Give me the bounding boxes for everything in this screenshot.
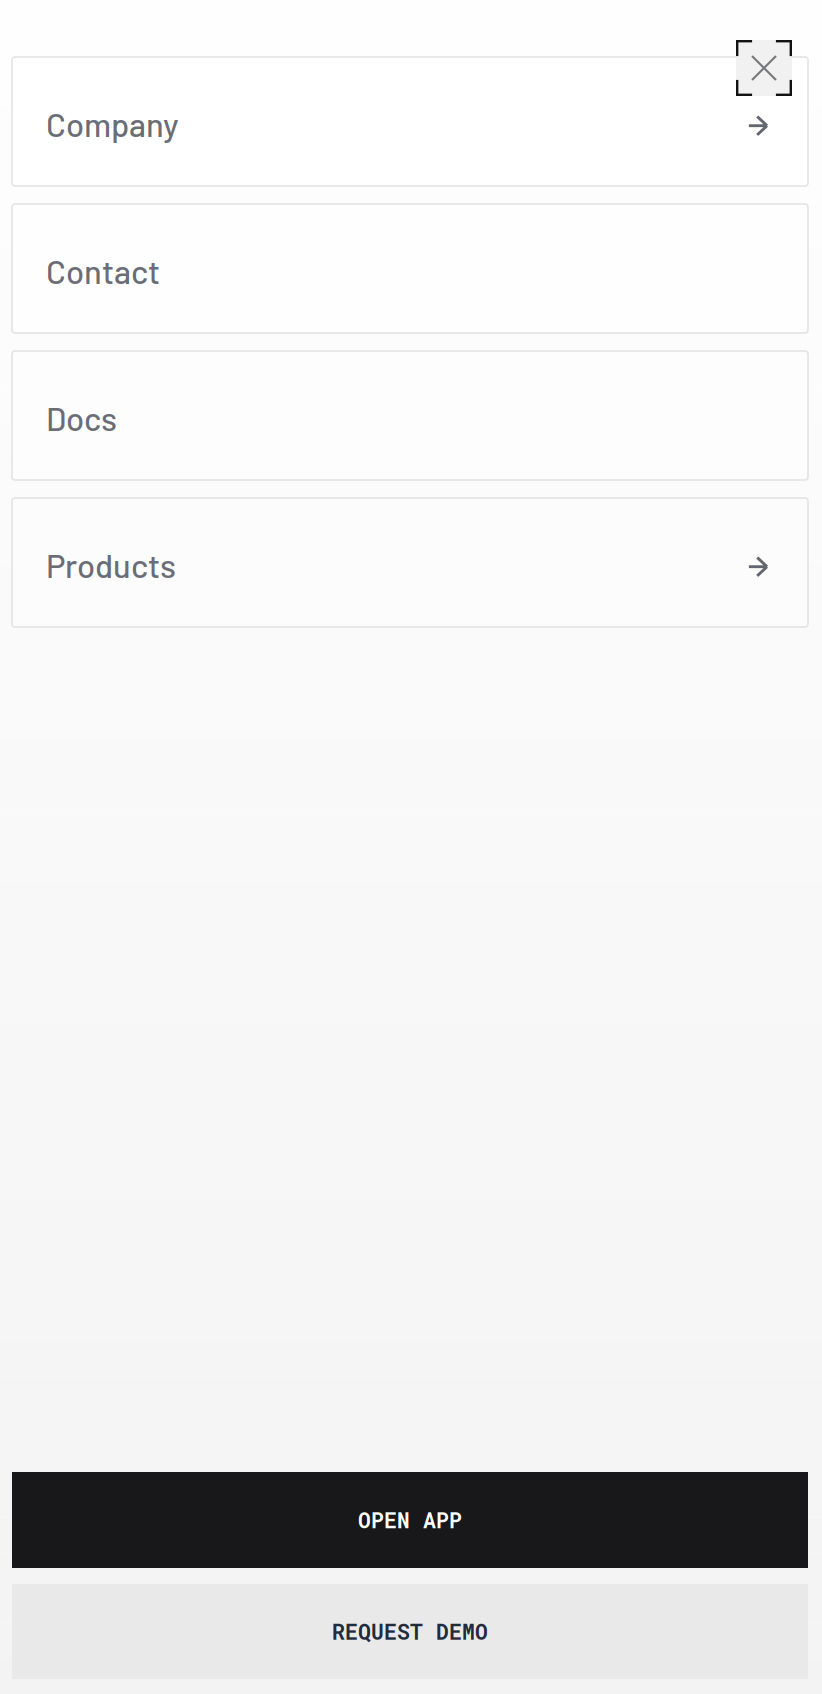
staticText: Products	[46, 545, 176, 585]
staticText: Company	[46, 104, 179, 144]
button[interactable]: Products	[12, 498, 808, 627]
button[interactable]: REQUEST DEMO	[12, 1584, 808, 1679]
staticText: Contact	[46, 251, 160, 291]
button[interactable]: Close menu	[736, 40, 792, 96]
button[interactable]: Contact	[12, 204, 808, 333]
staticText: OPEN APP	[358, 1506, 462, 1534]
staticText: Docs	[46, 398, 117, 438]
button[interactable]: Company	[12, 57, 808, 186]
staticText: REQUEST DEMO	[332, 1617, 488, 1645]
button[interactable]: Docs	[12, 351, 808, 480]
button[interactable]: OPEN APP	[12, 1472, 808, 1568]
